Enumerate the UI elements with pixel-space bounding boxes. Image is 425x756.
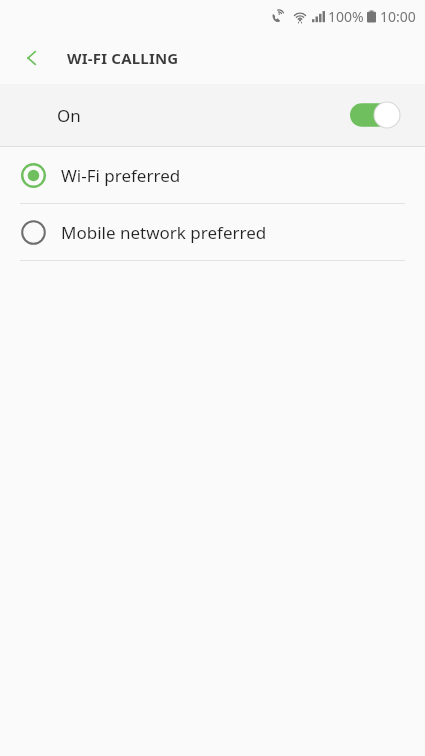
staticText: 10:00 — [380, 7, 416, 26]
staticText: 100% — [328, 7, 364, 26]
staticText: WI-FI CALLING — [67, 48, 179, 68]
staticText: On — [57, 104, 81, 127]
button[interactable]: Mobile network preferred — [0, 204, 425, 260]
button[interactable]: On — [0, 84, 425, 146]
staticText: Wi-Fi preferred — [61, 164, 181, 187]
button[interactable]: Wi-Fi calling on — [350, 102, 400, 128]
button[interactable]: Wi-Fi preferred — [0, 147, 425, 203]
button[interactable]: Back — [10, 36, 54, 80]
staticText: Mobile network preferred — [61, 221, 267, 244]
